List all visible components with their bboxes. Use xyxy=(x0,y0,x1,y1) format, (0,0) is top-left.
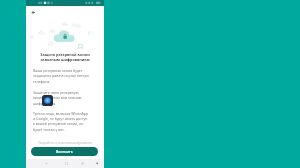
button[interactable]: Включить xyxy=(31,147,98,156)
button[interactable]: Подробнее о сквозном шифровании xyxy=(26,141,104,145)
staticText: шифрования. xyxy=(33,101,57,106)
button[interactable]: Back xyxy=(44,161,49,166)
button[interactable]: Back xyxy=(28,7,38,17)
button[interactable]: Recents xyxy=(80,161,85,166)
staticText: Включить xyxy=(56,149,73,154)
staticText: защищена даже в случае потери xyxy=(33,73,89,78)
staticText: и Google, не будут иметь доступ xyxy=(33,116,88,121)
staticText: Защита резервной копии xyxy=(26,52,104,57)
staticText: Защитите свою резервную xyxy=(33,90,79,95)
staticText: копию паролем или ключом xyxy=(33,95,82,100)
staticText: сквозным шифрованием xyxy=(26,57,104,62)
staticText: будет только у вас. xyxy=(33,127,65,132)
button[interactable]: Home xyxy=(64,161,69,166)
staticText: к вашей резервной копии, он xyxy=(33,121,84,126)
staticText: телефона. xyxy=(33,79,51,84)
staticText: Третьи лица, включая WhatsApp xyxy=(33,111,89,116)
staticText: Ваша резервная копия будет xyxy=(33,68,83,73)
